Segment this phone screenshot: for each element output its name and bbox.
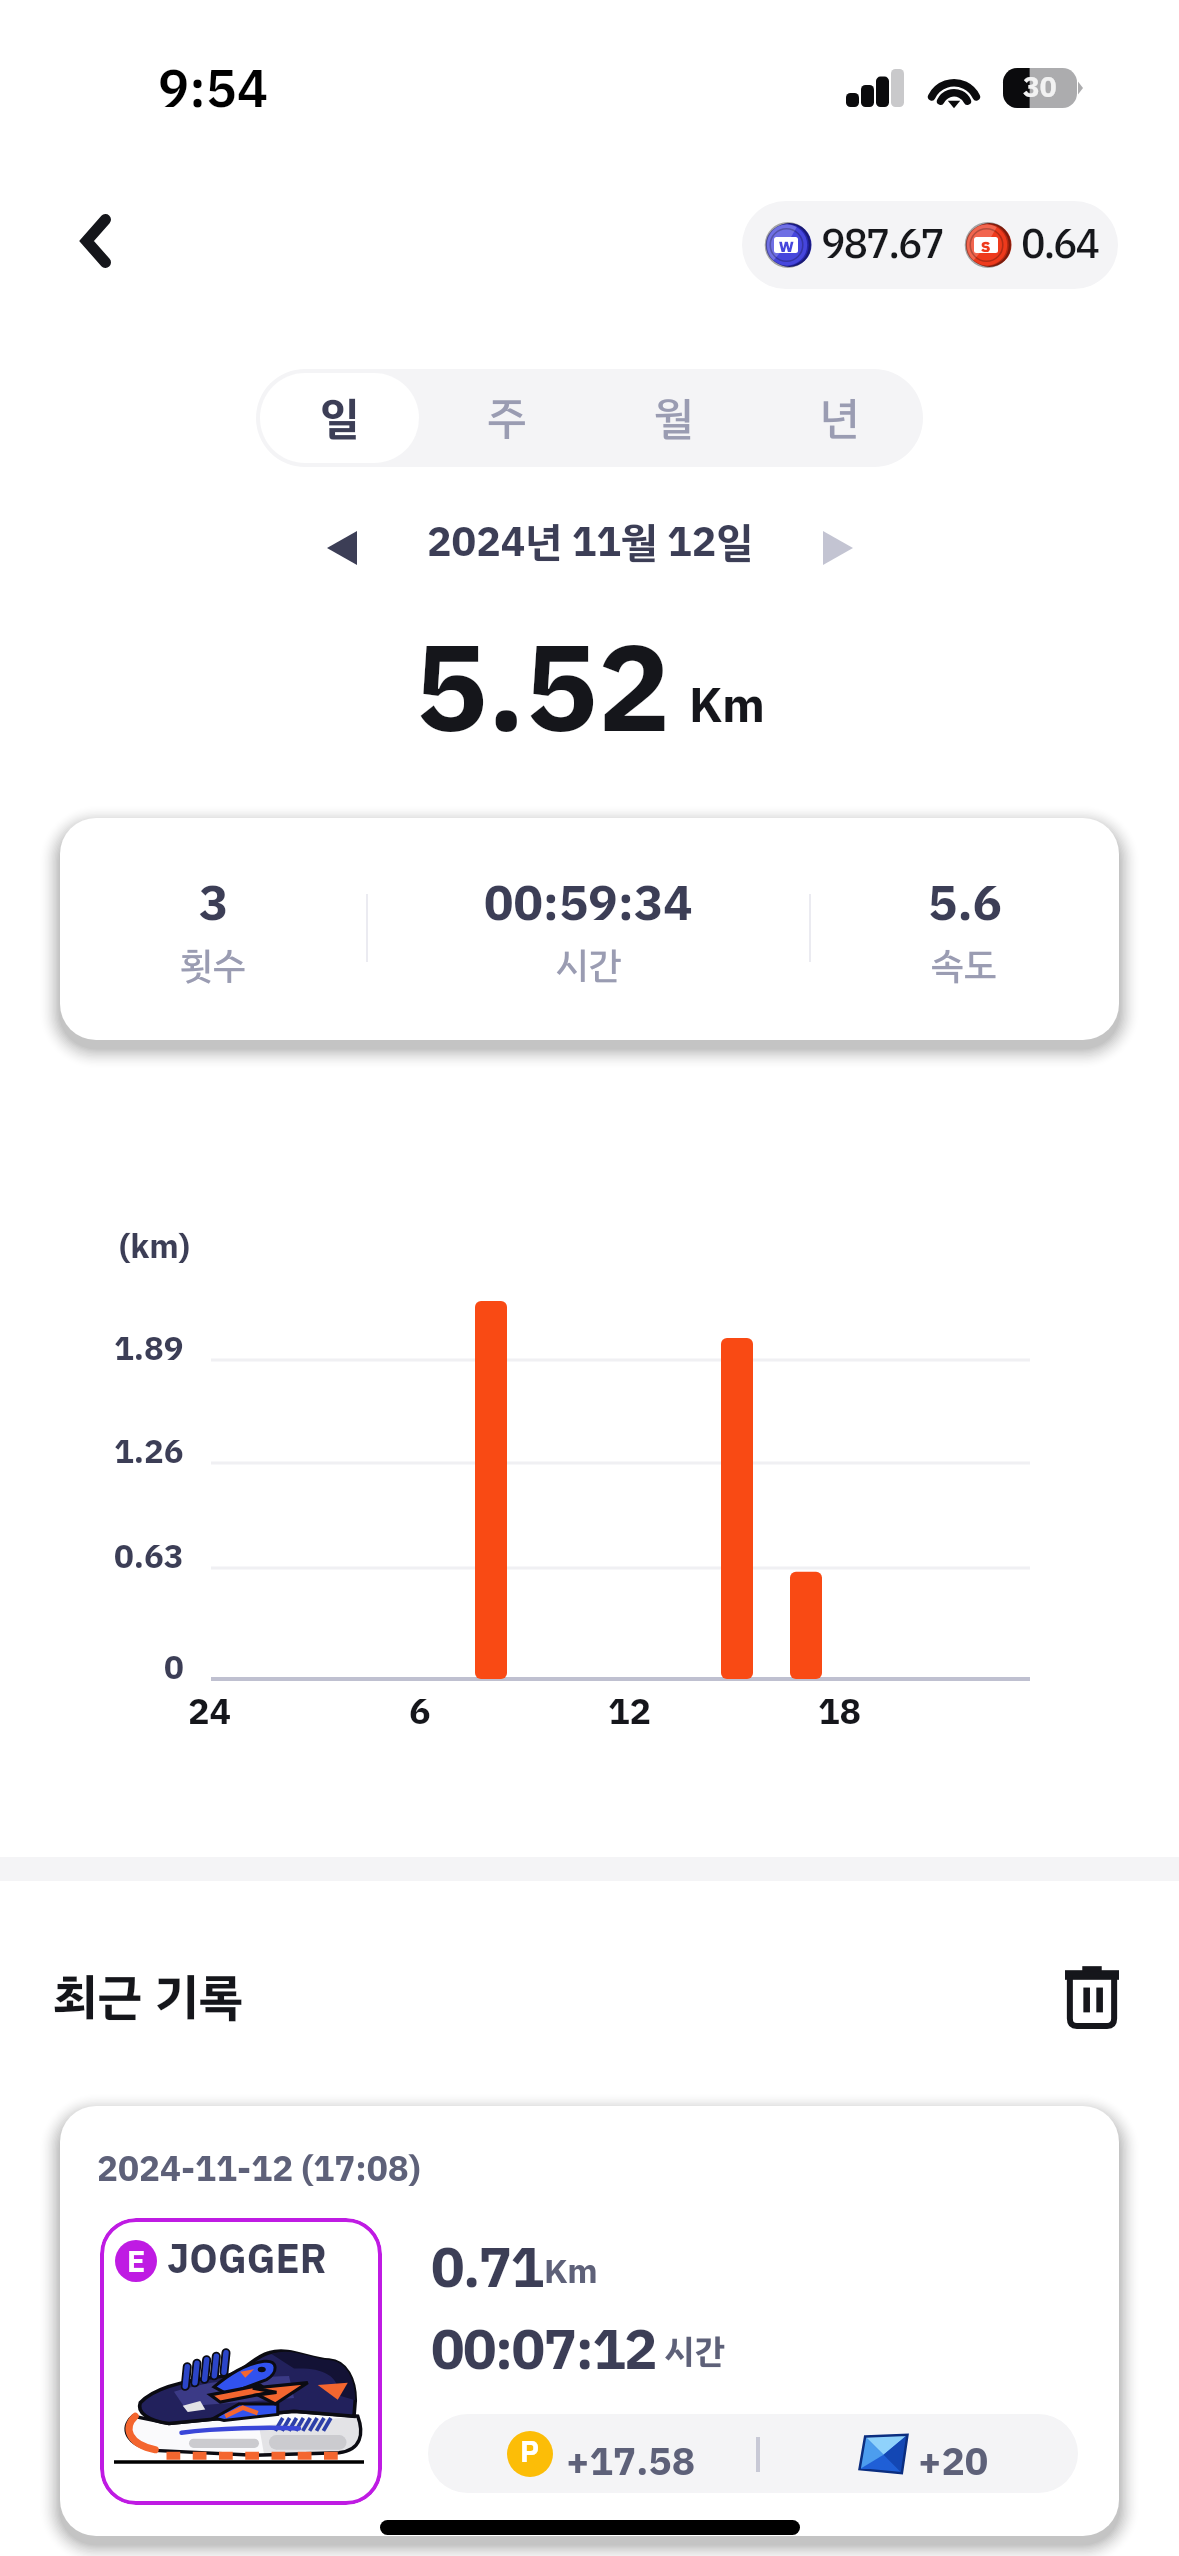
staticText: 0.63 xyxy=(114,1532,184,1582)
staticText: 1.89 xyxy=(114,1324,184,1374)
staticText: 월 xyxy=(654,385,694,451)
staticText: 주 xyxy=(487,385,527,451)
staticText: E xyxy=(127,2240,146,2281)
staticText: 2024년 11월 12일 xyxy=(427,512,753,574)
button[interactable]: Back xyxy=(53,198,139,284)
staticText: W xyxy=(779,236,794,252)
staticText: 24 xyxy=(188,1685,232,1739)
button[interactable]: 2024-11-12 (17:08) xyxy=(60,2106,1119,2536)
button[interactable]: Delete xyxy=(1050,1953,1134,2037)
staticText: (km) xyxy=(119,1222,190,1272)
staticText: 횟수 xyxy=(180,938,247,994)
staticText: 30 xyxy=(1023,67,1057,107)
staticText: 5.52 xyxy=(415,600,671,782)
button[interactable]: W xyxy=(742,201,1118,289)
button[interactable]: Previous day xyxy=(299,505,385,591)
staticText: 987.67 xyxy=(821,214,943,276)
staticText: 12 xyxy=(608,1685,652,1739)
staticText: 0.71 xyxy=(431,2226,543,2310)
staticText: 최근 기록 xyxy=(53,1960,244,2035)
staticText: 시간 xyxy=(664,2326,725,2377)
staticText: S xyxy=(981,236,991,252)
staticText: 00:59:34 xyxy=(484,867,693,941)
staticText: 일 xyxy=(320,385,360,451)
staticText: 18 xyxy=(818,1685,862,1739)
staticText: 년 xyxy=(820,385,860,451)
staticText: 5.6 xyxy=(928,867,1002,941)
staticText: 00:07:12 xyxy=(431,2308,656,2392)
staticText: 0 xyxy=(164,1643,184,1693)
button[interactable]: 주 xyxy=(423,369,590,467)
staticText: 3 xyxy=(199,867,229,941)
staticText: 6 xyxy=(409,1685,431,1739)
staticText: 9:54 xyxy=(158,51,269,129)
staticText: 2024-11-12 (17:08) xyxy=(97,2143,421,2196)
button[interactable]: 일 xyxy=(260,373,419,463)
staticText: Km xyxy=(544,2246,598,2297)
staticText: +20 xyxy=(918,2433,989,2492)
button[interactable]: Next day xyxy=(795,505,881,591)
staticText: 0.64 xyxy=(1021,214,1098,276)
staticText: P xyxy=(520,2431,540,2475)
button[interactable]: P xyxy=(428,2414,1078,2493)
staticText: 속도 xyxy=(931,938,998,994)
staticText: JOGGER xyxy=(167,2230,327,2290)
staticText: 1.26 xyxy=(114,1427,184,1477)
staticText: 시간 xyxy=(555,938,622,994)
staticText: +17.58 xyxy=(566,2433,696,2492)
button[interactable]: 년 xyxy=(757,369,923,467)
button[interactable]: 월 xyxy=(590,369,757,467)
staticText: Km xyxy=(689,670,765,742)
